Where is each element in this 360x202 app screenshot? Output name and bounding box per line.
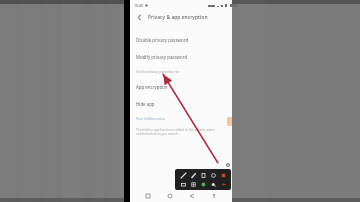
staticText: Your hidden notes <box>136 116 166 121</box>
button[interactable]: Hide app <box>130 95 232 112</box>
button[interactable]: Tool 1 <box>189 171 197 179</box>
button[interactable]: Settings <box>225 162 230 167</box>
button[interactable]: App encryption <box>130 78 232 95</box>
staticText: 10:40 <box>134 3 143 8</box>
button[interactable]: Tool 9 <box>219 180 227 188</box>
button[interactable]: Markup tools <box>175 169 231 190</box>
button[interactable]: Back <box>134 12 144 22</box>
staticText: App encryption <box>136 84 168 90</box>
button[interactable]: Share <box>210 192 218 200</box>
button[interactable]: Tool 2 <box>199 171 207 179</box>
button[interactable]: Modify privacy password <box>130 48 232 65</box>
staticText: Disable privacy password <box>136 37 189 43</box>
staticText: Set the privacy protection for <box>136 70 180 74</box>
staticText: Privacy & app encryption <box>148 14 208 21</box>
staticText: Modify privacy password <box>136 54 188 60</box>
staticText: unblocked when you search. <box>136 132 179 136</box>
button[interactable]: Home <box>166 192 174 200</box>
button[interactable]: Tool 7 <box>199 180 207 188</box>
staticText: Hide app <box>136 101 155 107</box>
button[interactable]: Tool 4 <box>219 171 227 179</box>
button[interactable]: Back <box>188 192 196 200</box>
button[interactable]: Tool 6 <box>189 180 197 188</box>
button[interactable]: Recents <box>144 192 152 200</box>
staticText: The hidden app has been added to the pri… <box>136 128 216 132</box>
button[interactable]: Tool 3 <box>209 171 217 179</box>
button[interactable]: Tool 5 <box>179 180 187 188</box>
button[interactable]: Disable privacy password <box>130 31 232 48</box>
button[interactable]: Tool 8 <box>209 180 217 188</box>
button[interactable]: Tool 0 <box>179 171 187 179</box>
